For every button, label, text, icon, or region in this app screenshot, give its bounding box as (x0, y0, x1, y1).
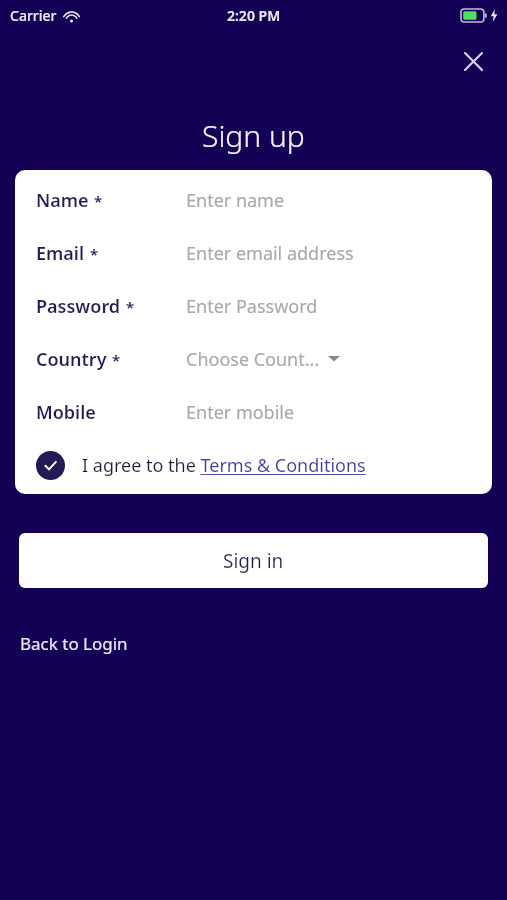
staticText: Enter name (186, 188, 285, 213)
staticText: * (90, 244, 99, 264)
staticText: * (126, 297, 135, 317)
staticText: Enter mobile (186, 400, 295, 425)
button[interactable]: Mobile (15, 386, 492, 439)
staticText: Email (36, 241, 85, 266)
staticText: Enter Password (186, 294, 318, 319)
staticText: * (112, 350, 121, 370)
button[interactable]: Password (15, 280, 492, 333)
button[interactable]: Sign in (19, 533, 488, 588)
button[interactable]: Close (455, 43, 491, 79)
staticText: Name (36, 188, 89, 213)
staticText: Choose Count... (186, 347, 320, 372)
button[interactable]: Email (15, 227, 492, 280)
staticText: Sign up (202, 115, 305, 156)
button[interactable]: Country (15, 333, 492, 386)
button[interactable]: Back to Login (12, 626, 136, 661)
button[interactable]: Name (15, 174, 492, 227)
staticText: Country (36, 347, 107, 372)
staticText: I agree to the Terms & Conditions (82, 453, 366, 478)
button[interactable]: I agree to the Terms & Conditions (15, 439, 492, 492)
staticText: Carrier (10, 6, 57, 25)
staticText: Mobile (36, 400, 96, 425)
staticText: 2:20 PM (227, 6, 281, 25)
staticText: Password (36, 294, 121, 319)
staticText: Enter email address (186, 241, 354, 266)
staticText: Back to Login (20, 632, 128, 655)
staticText: Sign in (223, 548, 284, 574)
staticText: * (94, 191, 103, 211)
